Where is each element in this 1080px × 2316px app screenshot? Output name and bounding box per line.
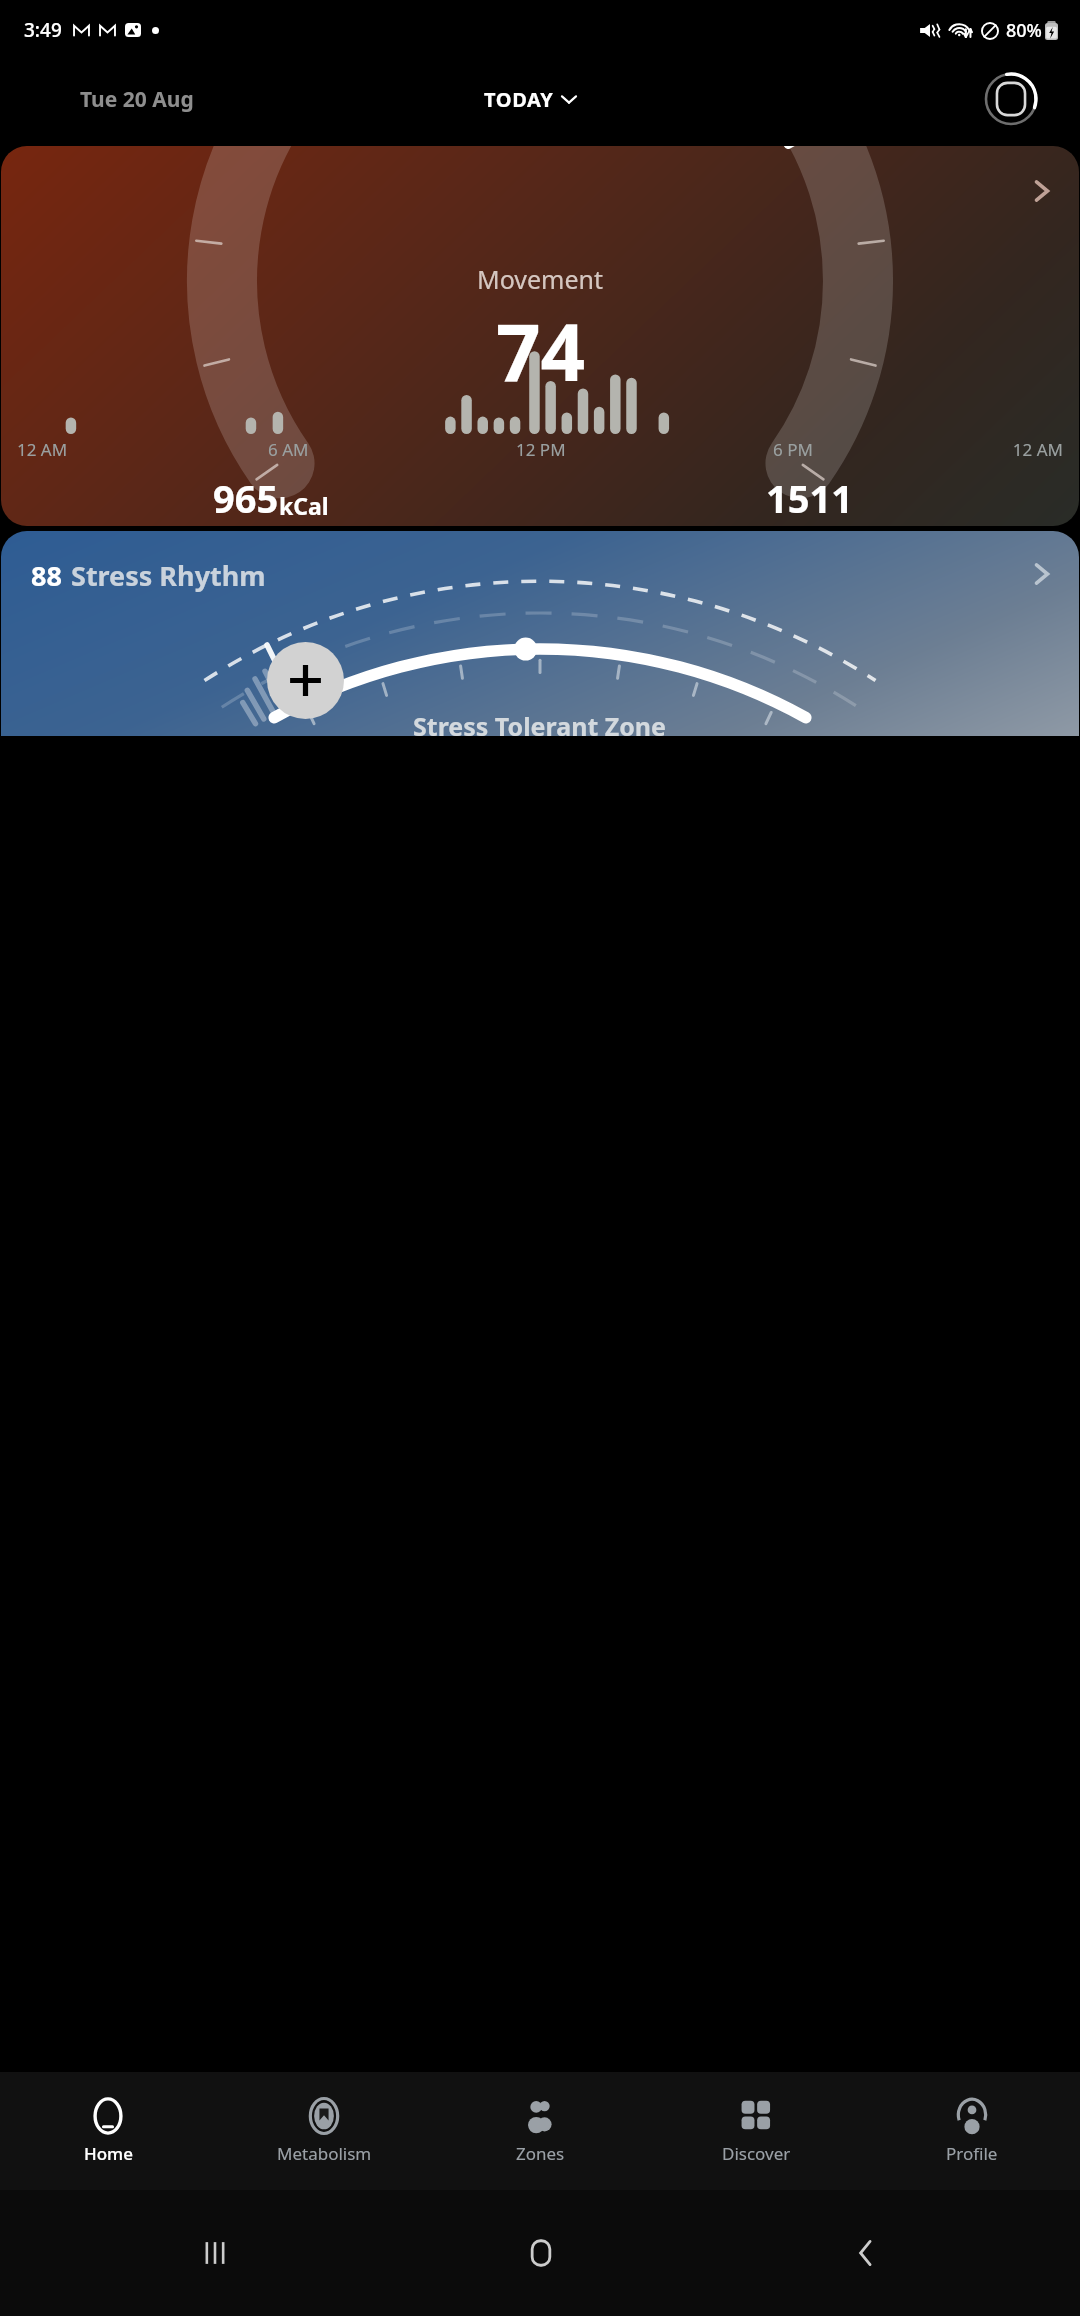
staticText: 6 AM	[268, 438, 309, 461]
staticText: Profile	[946, 2142, 998, 2165]
button[interactable]: Zones	[432, 2072, 648, 2190]
staticText: 12 PM	[516, 438, 566, 461]
staticText: 88	[31, 557, 62, 594]
staticText: kCal	[279, 490, 329, 521]
button[interactable]: Metabolism	[216, 2072, 432, 2190]
staticText: 6 PM	[773, 438, 813, 461]
staticText: 80%	[1006, 18, 1042, 43]
button[interactable]: Open stress rhythm details	[1019, 551, 1065, 597]
button[interactable]: Discover	[648, 2072, 864, 2190]
staticText: Zones	[516, 2142, 565, 2165]
staticText: 12 AM	[17, 438, 87, 461]
button[interactable]: Back	[703, 2213, 1028, 2293]
staticText: Discover	[722, 2142, 791, 2165]
button[interactable]: Add	[267, 642, 344, 719]
button[interactable]: TODAY	[478, 82, 582, 117]
staticText: Stress Tolerant Zone	[413, 709, 667, 736]
staticText: Stress Rhythm	[71, 557, 266, 594]
button[interactable]: Profile	[864, 2072, 1080, 2190]
button[interactable]: Recents	[52, 2213, 378, 2293]
staticText: Metabolism	[277, 2142, 372, 2165]
button[interactable]: 965	[1, 472, 540, 526]
button[interactable]: 88	[1, 531, 1079, 736]
staticText: TODAY	[484, 86, 554, 113]
button[interactable]: Profile	[984, 72, 1038, 126]
button[interactable]: 1511	[540, 472, 1079, 526]
button[interactable]: Home	[378, 2213, 703, 2293]
button[interactable]: Movement	[1, 146, 1079, 526]
staticText: 12 AM	[993, 438, 1063, 461]
staticText: Movement	[477, 262, 604, 296]
staticText: Home	[84, 2142, 133, 2165]
button[interactable]: Home	[0, 2072, 216, 2190]
staticText: 74	[496, 298, 586, 404]
staticText: 965	[213, 472, 279, 524]
staticText: 1511	[766, 472, 853, 524]
staticText: 3:49	[24, 17, 62, 43]
button[interactable]: Open movement details	[1019, 168, 1065, 214]
button[interactable]: Tue 20 Aug	[80, 85, 194, 114]
